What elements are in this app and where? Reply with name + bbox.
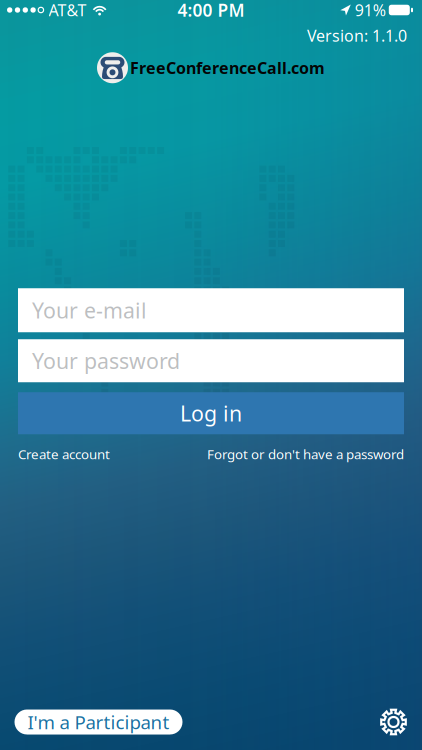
staticText: Version: 1.1.0	[307, 25, 407, 46]
staticText: Your password	[32, 347, 180, 375]
staticText: FreeConferenceCall.com	[130, 57, 325, 78]
button[interactable]: Create account	[18, 445, 110, 463]
button[interactable]: I'm a Participant	[14, 709, 182, 734]
staticText: AT&T	[49, 0, 87, 21]
staticText: Your e-mail	[32, 296, 147, 324]
staticText: Log in	[180, 399, 242, 427]
button[interactable]: Log in	[18, 392, 404, 434]
staticText: I'm a Participant	[27, 710, 169, 734]
staticText: Create account	[18, 445, 110, 463]
staticText: 4:00 PM	[177, 0, 244, 21]
button[interactable]: Settings	[379, 708, 407, 736]
staticText: Forgot or don't have a password	[207, 445, 404, 463]
button[interactable]: Forgot or don't have a password	[207, 445, 404, 463]
staticText: 91%	[355, 0, 386, 21]
